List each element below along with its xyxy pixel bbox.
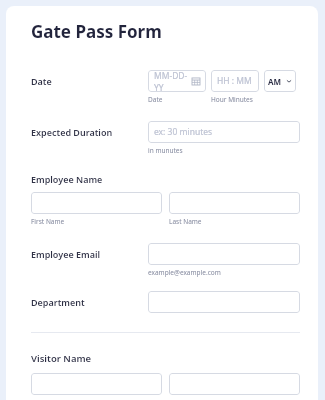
button[interactable]: MM-DD-YY bbox=[148, 70, 206, 92]
staticText: Employee Name bbox=[31, 173, 103, 185]
button[interactable]: AM bbox=[264, 70, 296, 92]
staticText: ex: 30 minutes bbox=[154, 126, 213, 138]
staticText: Visitor Name bbox=[31, 352, 92, 365]
staticText: Expected Duration bbox=[31, 126, 113, 138]
button[interactable] bbox=[169, 192, 300, 214]
staticText: MM-DD-YY bbox=[154, 70, 192, 92]
staticText: Department bbox=[31, 296, 85, 308]
staticText: AM bbox=[268, 76, 282, 87]
staticText: Date bbox=[31, 75, 52, 87]
staticText: Last Name bbox=[169, 217, 300, 226]
staticText: First Name bbox=[31, 217, 162, 226]
button[interactable] bbox=[31, 192, 162, 214]
button[interactable] bbox=[31, 373, 162, 395]
staticText: Employee Email bbox=[31, 248, 101, 260]
staticText: Gate Pass Form bbox=[31, 20, 162, 43]
staticText: in munutes bbox=[148, 146, 183, 155]
button[interactable] bbox=[148, 291, 300, 313]
staticText: HH : MM bbox=[217, 75, 252, 87]
button[interactable] bbox=[148, 243, 300, 265]
button[interactable]: ex: 30 minutes bbox=[148, 121, 300, 143]
staticText: Date bbox=[148, 95, 211, 104]
button[interactable] bbox=[169, 373, 300, 395]
staticText: Hour Minutes bbox=[211, 95, 253, 104]
staticText: example@example.com bbox=[148, 268, 221, 277]
button[interactable]: HH : MM bbox=[211, 70, 259, 92]
